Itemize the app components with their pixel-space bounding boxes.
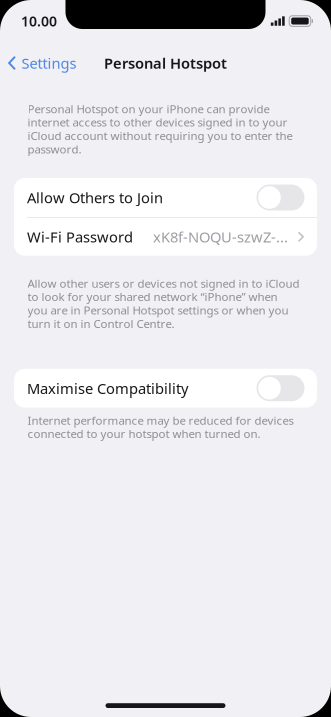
button[interactable]: Wi-Fi Password bbox=[14, 218, 317, 256]
staticText: Internet performance may be reduced for … bbox=[27, 413, 293, 440]
staticText: Maximise Compatibility bbox=[27, 379, 188, 398]
button[interactable]: Allow Others to Join bbox=[14, 178, 317, 217]
staticText: Personal Hotspot bbox=[104, 53, 227, 72]
staticText: xK8f-NOQU-szwZ-... bbox=[153, 227, 288, 246]
staticText: Personal Hotspot on your iPhone can prov… bbox=[27, 102, 292, 156]
staticText: Allow Others to Join bbox=[27, 188, 163, 207]
staticText: Allow other users or devices not signed … bbox=[27, 276, 299, 330]
button[interactable]: Maximise Compatibility bbox=[14, 369, 317, 408]
staticText: Wi-Fi Password bbox=[27, 227, 133, 246]
button[interactable]: Settings bbox=[0, 47, 87, 78]
staticText: 10.00 bbox=[21, 12, 57, 30]
staticText: Settings bbox=[22, 53, 77, 72]
